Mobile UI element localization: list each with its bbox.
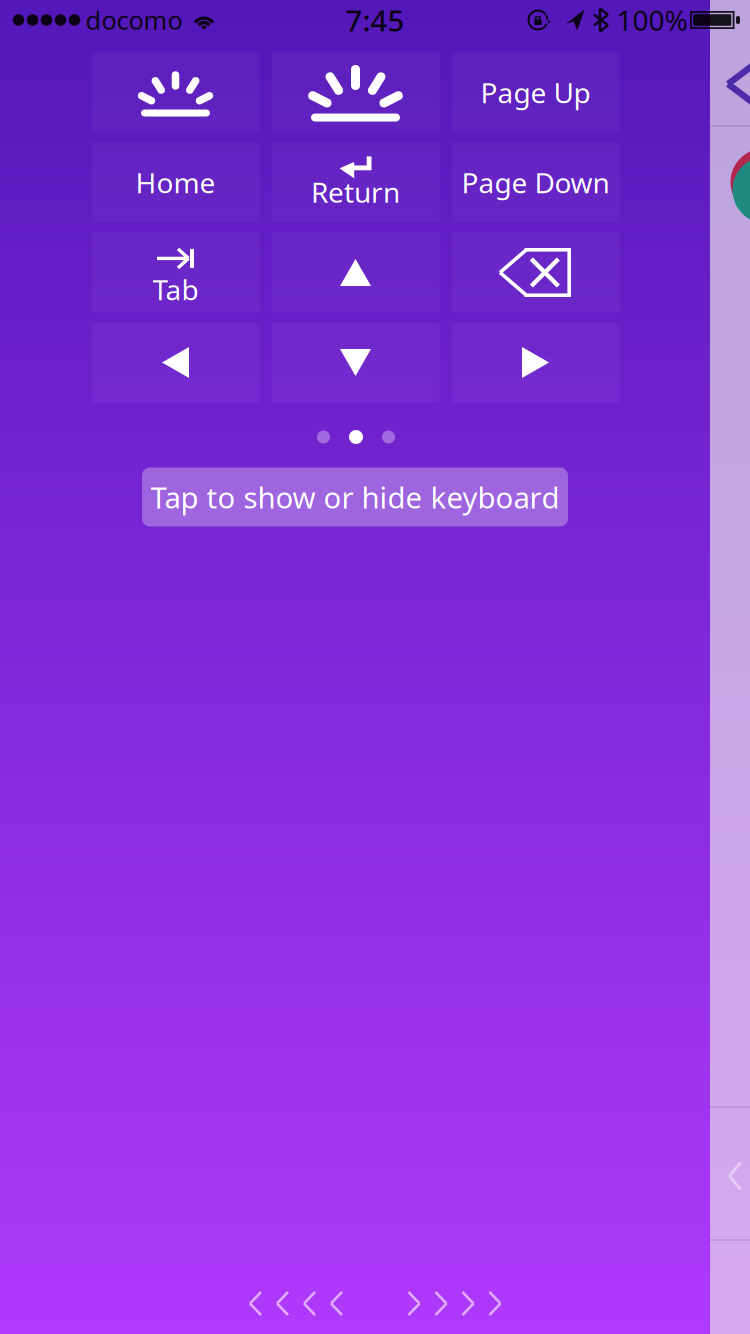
button[interactable]: Keyboard brightness up [271,52,439,132]
staticText: 100% [616,1,687,39]
button[interactable]: Up [271,232,439,312]
button[interactable]: Left [91,322,259,402]
button[interactable]: Tab [91,232,259,312]
staticText: Tab [152,271,198,308]
button[interactable]: Right [451,322,619,402]
staticText: Page Down [461,164,609,201]
button[interactable]: Delete [451,232,619,312]
staticText: Tap to show or hide keyboard [150,477,559,516]
staticText: 7:45 [345,0,404,39]
staticText: Page Up [480,74,590,111]
button[interactable]: Tap to show or hide keyboard [142,467,568,526]
button[interactable]: Page Up [451,52,619,132]
button[interactable]: Page Down [451,142,619,222]
button[interactable]: Return [271,142,439,222]
button[interactable]: Home [91,142,259,222]
button[interactable]: Down [271,322,439,402]
staticText: docomo [85,3,182,37]
staticText: Home [135,164,215,201]
staticText: Return [311,173,400,211]
button[interactable]: Keyboard brightness down [91,52,259,132]
